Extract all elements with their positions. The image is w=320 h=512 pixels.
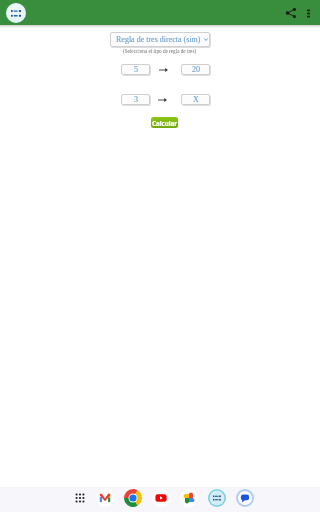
button[interactable]: 3: [121, 94, 150, 105]
staticText: X: [193, 95, 199, 104]
staticText: Regla de tres directa (sim): [116, 35, 201, 44]
button[interactable]: Chrome: [122, 487, 144, 509]
button[interactable]: YouTube: [150, 487, 172, 509]
staticText: 20: [192, 65, 200, 74]
staticText: 3: [134, 95, 138, 104]
staticText: Calcular: [152, 119, 178, 127]
button[interactable]: Regla de tres: [206, 487, 228, 509]
button[interactable]: 20: [181, 64, 210, 75]
staticText: 5: [134, 65, 138, 74]
button[interactable]: 5: [121, 64, 150, 75]
button[interactable]: X: [181, 94, 210, 105]
button[interactable]: Share: [281, 3, 301, 23]
other: Regla de tres: [6, 3, 26, 23]
button[interactable]: Messages: [234, 487, 256, 509]
staticText: (Selecciona el tipo de regla de tres): [123, 48, 197, 54]
button[interactable]: Calcular: [151, 117, 178, 128]
button[interactable]: Google Photos: [178, 487, 200, 509]
button[interactable]: Regla de tres directa (sim): [110, 32, 210, 47]
button[interactable]: Gmail: [94, 487, 116, 509]
button[interactable]: Apps: [69, 487, 91, 509]
button[interactable]: More options: [298, 3, 318, 23]
